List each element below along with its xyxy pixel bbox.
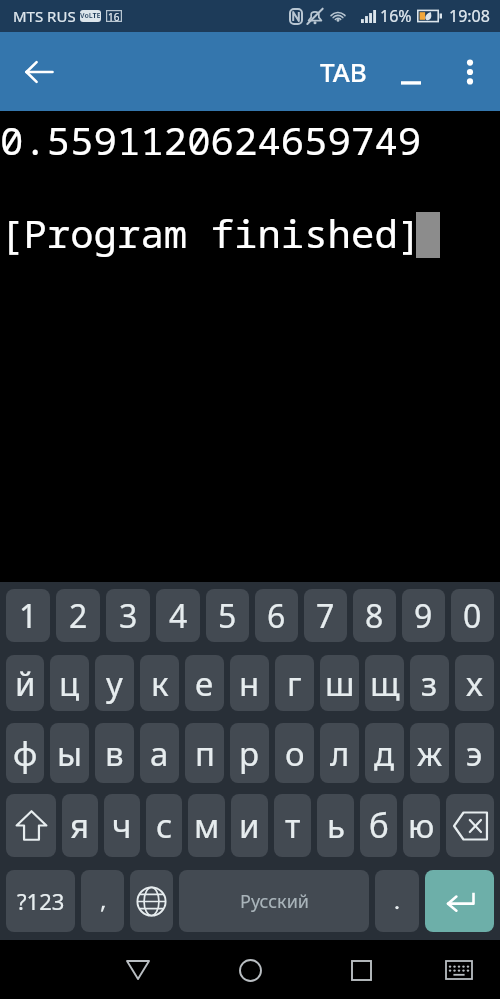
button[interactable]: е (185, 655, 224, 711)
button[interactable]: Backspace (446, 794, 494, 857)
button[interactable]: о (275, 723, 314, 783)
button[interactable]: ф (6, 723, 44, 783)
button[interactable]: ю (403, 794, 440, 857)
staticText: 0.5591120624659749 (0, 113, 422, 166)
button[interactable]: к (140, 655, 179, 711)
button[interactable]: Period (375, 870, 419, 932)
button[interactable]: 3 (106, 589, 150, 642)
staticText: ц (59, 661, 80, 706)
button[interactable]: ы (50, 723, 89, 783)
button[interactable]: Hide keyboard (434, 945, 484, 995)
button[interactable]: л (320, 723, 359, 783)
button[interactable]: 1 (6, 589, 50, 642)
staticText: м (194, 803, 220, 848)
staticText: з (421, 661, 438, 706)
staticText: б (369, 803, 389, 848)
button[interactable]: и (231, 794, 268, 857)
button[interactable]: Recent apps (336, 945, 386, 995)
staticText: 7 (316, 594, 335, 638)
button[interactable]: х (455, 655, 494, 711)
button[interactable]: щ (365, 655, 404, 711)
button[interactable]: д (365, 723, 404, 783)
staticText: ф (13, 731, 38, 776)
button[interactable]: ш (320, 655, 359, 711)
staticText: 8 (365, 594, 384, 638)
button[interactable]: ж (410, 723, 449, 783)
staticText: 5 (218, 594, 237, 638)
staticText: ж (417, 731, 443, 776)
button[interactable]: с (146, 794, 182, 857)
staticText: 0 (463, 594, 482, 638)
button[interactable]: 2 (56, 589, 100, 642)
staticText: 2 (69, 594, 88, 638)
button[interactable]: Tab key (388, 49, 434, 95)
button[interactable]: р (230, 723, 269, 783)
button[interactable]: Change language (130, 870, 173, 932)
button[interactable]: Comma (81, 870, 124, 932)
staticText: MTS RUS (13, 6, 76, 26)
button[interactable]: ь (317, 794, 354, 857)
staticText: а (150, 731, 169, 776)
staticText: х (466, 661, 483, 706)
staticText: д (374, 731, 395, 776)
button[interactable]: TAB (310, 44, 377, 99)
staticText: п (195, 731, 215, 776)
button[interactable]: Home (225, 945, 275, 995)
button[interactable]: г (275, 655, 314, 711)
staticText: е (195, 661, 214, 706)
staticText: р (239, 731, 260, 776)
button[interactable]: Enter (425, 870, 494, 932)
staticText: VoLTE (80, 11, 101, 21)
button[interactable]: ц (50, 655, 89, 711)
staticText: ь (327, 803, 345, 848)
button[interactable]: т (274, 794, 311, 857)
button[interactable]: 5 (206, 589, 249, 642)
button[interactable]: н (230, 655, 269, 711)
staticText: к (151, 661, 169, 706)
staticText: и (239, 803, 260, 848)
staticText: 19:08 (449, 5, 490, 27)
staticText: 3 (119, 594, 138, 638)
button[interactable]: б (360, 794, 397, 857)
staticText: г (287, 661, 302, 706)
button[interactable]: 0 (451, 589, 494, 642)
button[interactable]: Русский (179, 870, 369, 932)
button[interactable]: 7 (304, 589, 347, 642)
button[interactable]: 6 (255, 589, 298, 642)
button[interactable]: м (188, 794, 225, 857)
staticText: э (466, 731, 483, 776)
staticText: т (285, 803, 301, 848)
button[interactable]: ?123 (6, 870, 75, 932)
button[interactable]: я (62, 794, 98, 857)
button[interactable]: Back (113, 945, 163, 995)
staticText: ы (57, 731, 83, 776)
staticText: ш (325, 661, 355, 706)
staticText: й (15, 661, 36, 706)
staticText: ч (112, 803, 132, 848)
staticText: ю (408, 803, 435, 848)
button[interactable]: з (410, 655, 449, 711)
button[interactable]: э (455, 723, 494, 783)
staticText: 4 (169, 594, 188, 638)
button[interactable]: в (95, 723, 134, 783)
staticText: л (330, 731, 350, 776)
staticText: с (156, 803, 173, 848)
button[interactable]: й (6, 655, 44, 711)
staticText: 6 (267, 594, 286, 638)
staticText: о (285, 731, 305, 776)
staticText: [Program finished] (0, 206, 422, 259)
staticText: 9 (414, 594, 433, 638)
button[interactable]: 8 (353, 589, 396, 642)
staticText: у (106, 661, 123, 706)
staticText: я (70, 803, 90, 848)
button[interactable]: More options (446, 48, 494, 96)
button[interactable]: а (140, 723, 179, 783)
button[interactable]: п (185, 723, 224, 783)
button[interactable]: ч (104, 794, 140, 857)
staticText: 1 (19, 594, 38, 638)
button[interactable]: у (95, 655, 134, 711)
button[interactable]: Shift (6, 794, 56, 857)
button[interactable]: Back (11, 44, 67, 100)
button[interactable]: 9 (402, 589, 445, 642)
button[interactable]: 4 (156, 589, 200, 642)
